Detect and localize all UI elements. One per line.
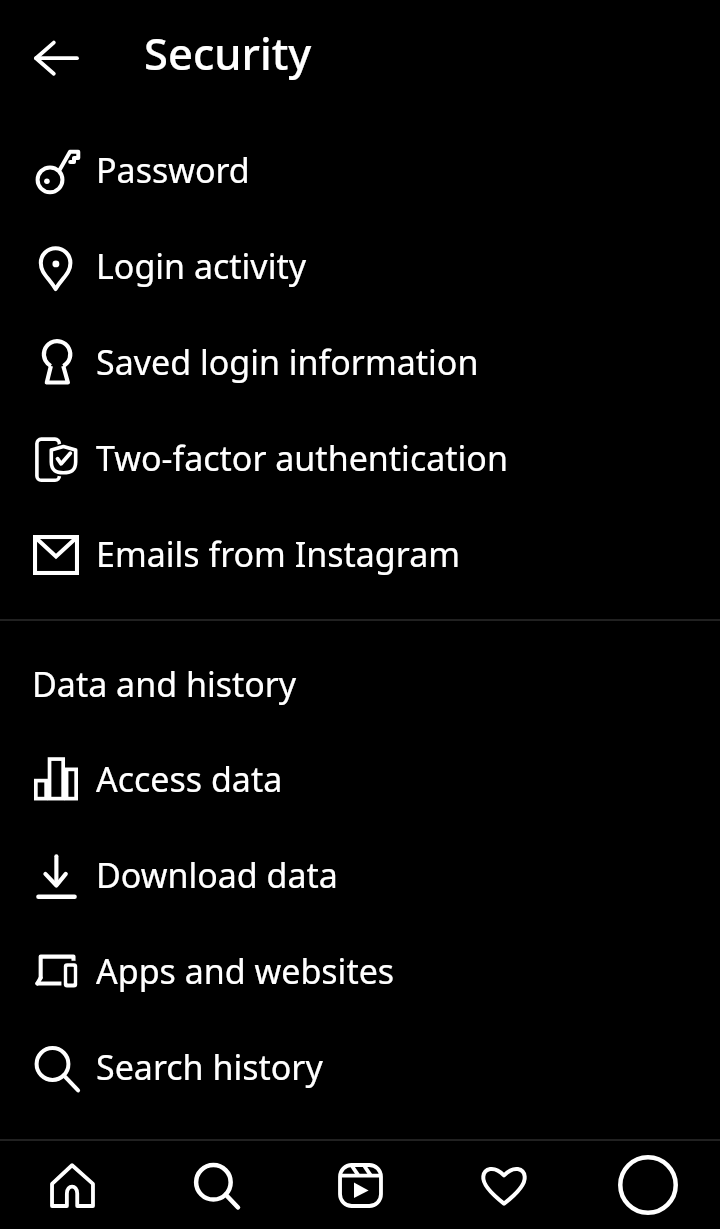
staticText: Access data: [96, 756, 283, 802]
staticText: Apps and websites: [96, 948, 395, 994]
button[interactable]: Apps and websites: [0, 923, 720, 1019]
button[interactable]: Password: [0, 122, 720, 218]
button[interactable]: Search: [144, 1141, 288, 1229]
staticText: Download data: [96, 852, 338, 898]
button[interactable]: Back: [24, 25, 88, 89]
button[interactable]: Two-factor authentication: [0, 410, 720, 506]
button[interactable]: Login activity: [0, 218, 720, 314]
staticText: Login activity: [96, 243, 307, 289]
staticText: Search history: [96, 1044, 323, 1090]
button[interactable]: Search history: [0, 1019, 720, 1115]
button[interactable]: Emails from Instagram: [0, 506, 720, 602]
staticText: Data and history: [32, 661, 297, 707]
button[interactable]: Profile: [576, 1141, 720, 1229]
button[interactable]: Activity: [432, 1141, 576, 1229]
button[interactable]: Home: [0, 1141, 144, 1229]
staticText: Password: [96, 147, 250, 193]
staticText: Saved login information: [96, 339, 479, 385]
button[interactable]: Reels: [288, 1141, 432, 1229]
button[interactable]: Access data: [0, 731, 720, 827]
button[interactable]: Download data: [0, 827, 720, 923]
staticText: Security: [144, 23, 312, 82]
button[interactable]: Saved login information: [0, 314, 720, 410]
staticText: Emails from Instagram: [96, 531, 461, 577]
staticText: Two-factor authentication: [96, 435, 508, 481]
